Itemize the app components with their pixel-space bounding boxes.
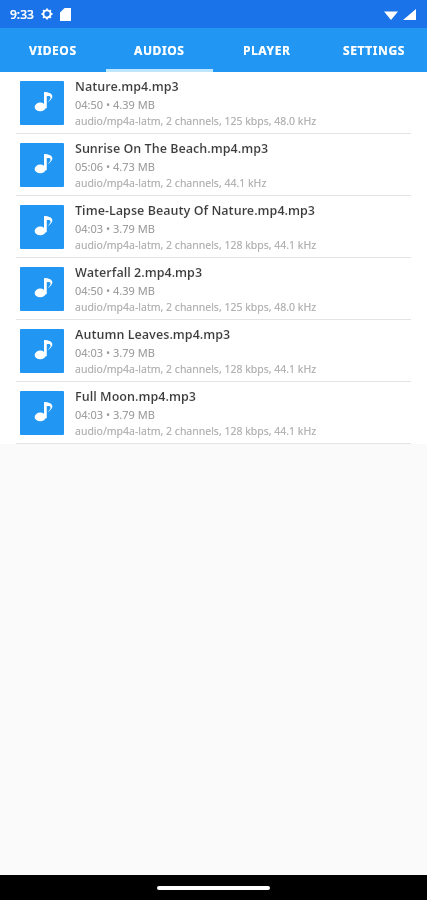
staticText: PLAYER <box>243 42 291 58</box>
other: Audio file <box>29 152 55 178</box>
button[interactable]: Audio file <box>0 258 427 319</box>
button[interactable]: Audio file <box>0 382 427 443</box>
other: Audio file <box>29 338 55 364</box>
button[interactable]: SETTINGS <box>320 28 427 72</box>
staticText: 04:50 • 4.39 MB <box>75 283 155 298</box>
staticText: Time-Lapse Beauty Of Nature.mp4.mp3 <box>75 202 316 219</box>
button[interactable]: Audio file <box>0 72 427 133</box>
staticText: 05:06 • 4.73 MB <box>75 159 155 174</box>
button[interactable]: PLAYER <box>213 28 320 72</box>
other: Audio file <box>29 276 55 302</box>
staticText: VIDEOS <box>29 42 77 58</box>
staticText: SETTINGS <box>343 42 405 58</box>
staticText: 04:03 • 3.79 MB <box>75 221 155 236</box>
other: Audio file <box>29 214 55 240</box>
staticText: Autumn Leaves.mp4.mp3 <box>75 326 231 343</box>
staticText: Full Moon.mp4.mp3 <box>75 388 196 405</box>
button[interactable]: Audio file <box>0 320 427 381</box>
staticText: 04:03 • 3.79 MB <box>75 345 155 360</box>
staticText: AUDIOS <box>134 42 185 58</box>
staticText: audio/mp4a-latm, 2 channels, 125 kbps, 4… <box>75 114 317 128</box>
staticText: audio/mp4a-latm, 2 channels, 125 kbps, 4… <box>75 300 317 314</box>
button[interactable]: Audio file <box>0 134 427 195</box>
staticText: audio/mp4a-latm, 2 channels, 128 kbps, 4… <box>75 424 317 438</box>
staticText: audio/mp4a-latm, 2 channels, 128 kbps, 4… <box>75 362 317 376</box>
staticText: Nature.mp4.mp3 <box>75 78 179 95</box>
other: Audio file <box>29 90 55 116</box>
button[interactable]: AUDIOS <box>106 28 213 72</box>
staticText: audio/mp4a-latm, 2 channels, 128 kbps, 4… <box>75 238 317 252</box>
other: Audio file <box>29 400 55 426</box>
staticText: 9:33 <box>10 6 34 22</box>
staticText: Sunrise On The Beach.mp4.mp3 <box>75 140 269 157</box>
button[interactable]: Audio file <box>0 196 427 257</box>
staticText: 04:03 • 3.79 MB <box>75 407 155 422</box>
staticText: audio/mp4a-latm, 2 channels, 44.1 kHz <box>75 176 267 190</box>
staticText: Waterfall 2.mp4.mp3 <box>75 264 203 281</box>
button[interactable]: VIDEOS <box>0 28 106 72</box>
staticText: 04:50 • 4.39 MB <box>75 97 155 112</box>
